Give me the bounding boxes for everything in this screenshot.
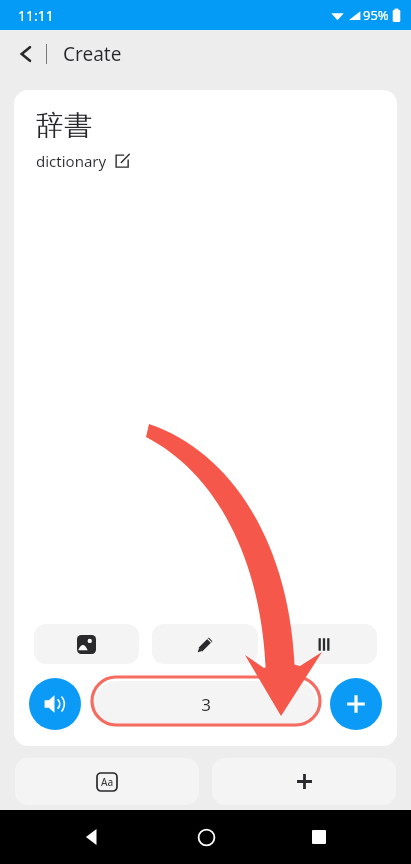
button[interactable]: Home (184, 815, 228, 859)
button[interactable]: Back (70, 815, 114, 859)
staticText: Create (63, 41, 122, 67)
button[interactable]: Columns (271, 624, 377, 664)
button[interactable]: dictionary (36, 151, 129, 171)
button[interactable]: 3 (94, 681, 317, 727)
button[interactable]: Add (330, 678, 382, 730)
staticText: dictionary (36, 151, 107, 171)
staticText: Aa (101, 775, 114, 789)
staticText: 辞書 (36, 108, 92, 143)
staticText: 95% (363, 6, 389, 24)
button[interactable]: Recent apps (297, 815, 341, 859)
button[interactable]: Play sound (29, 678, 81, 730)
button[interactable]: Text style (15, 758, 199, 805)
button[interactable]: Back (6, 34, 46, 74)
button[interactable]: Insert image (34, 624, 139, 664)
button[interactable]: Draw (152, 624, 258, 664)
button[interactable]: Add card (212, 758, 396, 805)
staticText: 3 (201, 693, 211, 716)
staticText: 11:11 (18, 6, 54, 25)
